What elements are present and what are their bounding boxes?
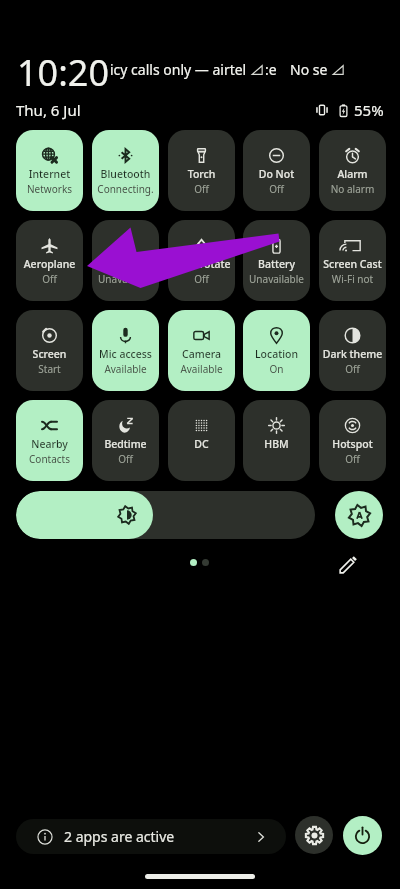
button[interactable]: Bluetooth — [92, 130, 159, 211]
button[interactable]: Bedtime — [92, 400, 159, 481]
button[interactable]: Tile — [92, 220, 159, 301]
staticText: Off — [319, 362, 386, 376]
staticText: Torch — [168, 167, 235, 181]
button[interactable]: Dark theme — [319, 310, 386, 391]
staticText: On — [243, 362, 310, 376]
staticText: No se — [290, 60, 328, 79]
button[interactable]: Aeroplane — [16, 220, 83, 301]
staticText: Contacts — [16, 452, 83, 466]
staticText: Dark theme — [319, 347, 386, 361]
staticText: :e — [265, 60, 277, 79]
staticText: Available — [168, 362, 235, 376]
button[interactable]: Torch — [168, 130, 235, 211]
staticText: DC — [168, 437, 235, 451]
staticText: icy calls only — airtel — [110, 60, 247, 79]
button[interactable]: Location — [243, 310, 310, 391]
staticText: Hotspot — [319, 437, 386, 451]
staticText: No alarm — [319, 182, 386, 196]
button[interactable]: Hotspot — [319, 400, 386, 481]
staticText: Off — [319, 452, 386, 466]
button[interactable]: Auto-rotate — [168, 220, 235, 301]
staticText: Off — [92, 452, 159, 466]
button[interactable]: Mic access — [92, 310, 159, 391]
staticText: Alarm — [319, 167, 386, 181]
button[interactable]: Internet — [16, 130, 83, 211]
button[interactable]: HBM — [243, 400, 310, 481]
staticText: 2 apps are active — [64, 827, 175, 846]
button[interactable]: Nearby — [16, 400, 83, 481]
staticText: Off — [168, 182, 235, 196]
staticText: Bedtime — [92, 437, 159, 451]
staticText: 10:20 — [17, 48, 110, 97]
button[interactable]: Do Not — [243, 130, 310, 211]
button[interactable]: Power — [343, 816, 382, 855]
staticText: Screen Cast — [319, 257, 386, 271]
staticText: Screen — [16, 347, 83, 361]
staticText: Do Not — [243, 167, 310, 181]
staticText: Nearby — [16, 437, 83, 451]
staticText: Camera — [168, 347, 235, 361]
staticText: Start — [16, 362, 83, 376]
staticText: Unavailable — [243, 272, 310, 286]
staticText: Unavailable — [92, 272, 159, 286]
staticText: Aeroplane — [16, 257, 83, 271]
staticText: Connecting. — [92, 182, 159, 196]
button[interactable]: Screen Cast — [319, 220, 386, 301]
button[interactable]: Edit tiles — [336, 552, 360, 576]
staticText: 55% — [354, 100, 384, 120]
button[interactable]: Screen — [16, 310, 83, 391]
staticText: Battery — [243, 257, 310, 271]
staticText: Off — [16, 272, 83, 286]
staticText: Thu, 6 Jul — [16, 100, 81, 120]
button[interactable]: Alarm — [319, 130, 386, 211]
staticText: Networks — [16, 182, 83, 196]
staticText: HBM — [243, 437, 310, 451]
button[interactable]: Auto brightness — [335, 491, 383, 539]
button[interactable]: Brightness — [16, 491, 315, 539]
staticText: Off — [168, 272, 235, 286]
staticText: Mic access — [92, 347, 159, 361]
staticText: Available — [92, 362, 159, 376]
button[interactable]: Battery — [243, 220, 310, 301]
staticText: Auto-rotate — [168, 257, 235, 271]
staticText: Internet — [16, 167, 83, 181]
staticText: Location — [243, 347, 310, 361]
staticText: Wi-Fi not — [319, 272, 386, 286]
button[interactable]: Camera — [168, 310, 235, 391]
button[interactable]: 2 apps are active — [16, 819, 286, 854]
button[interactable]: DC — [168, 400, 235, 481]
button[interactable]: Settings — [295, 816, 333, 854]
staticText: Bluetooth — [92, 167, 159, 181]
staticText: Off — [243, 182, 310, 196]
